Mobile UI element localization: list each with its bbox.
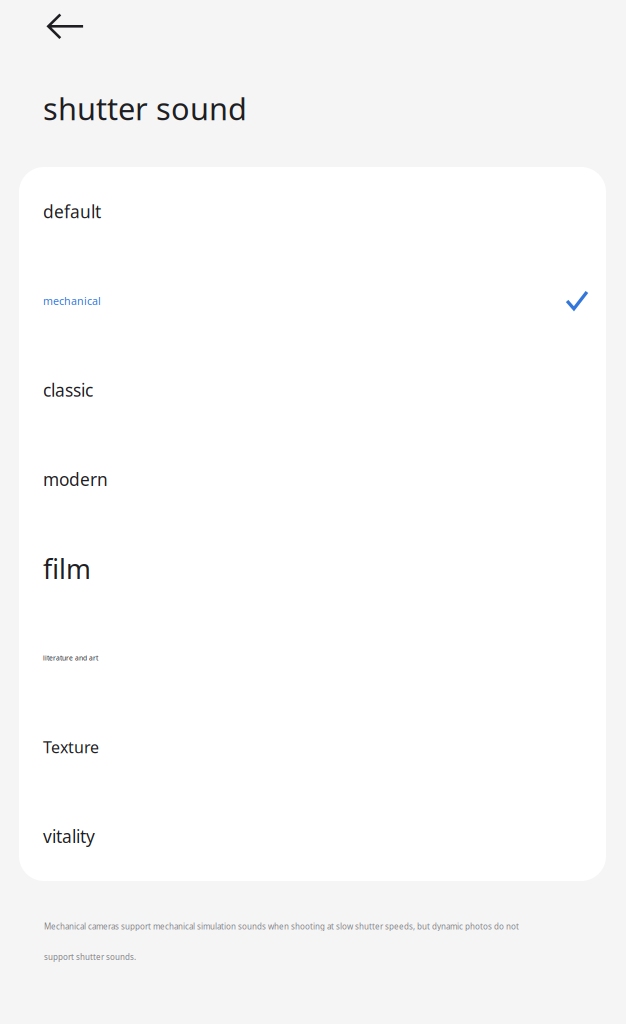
staticText: modern: [43, 468, 108, 491]
button[interactable]: mechanical: [19, 256, 606, 345]
staticText: Texture: [43, 736, 99, 758]
staticText: film: [43, 551, 91, 586]
staticText: shutter sound: [43, 88, 247, 129]
staticText: support shutter sounds.: [44, 952, 136, 962]
button[interactable]: vitality: [19, 792, 606, 881]
staticText: mechanical: [43, 294, 101, 308]
button[interactable]: Texture: [19, 702, 606, 792]
button[interactable]: modern: [19, 435, 606, 524]
button[interactable]: film: [19, 524, 606, 613]
staticText: classic: [43, 379, 93, 402]
staticText: Mechanical cameras support mechanical si…: [44, 921, 519, 932]
button[interactable]: default: [19, 167, 606, 256]
staticText: literature and art: [43, 653, 98, 662]
button[interactable]: literature and art: [19, 613, 606, 702]
staticText: vitality: [43, 825, 95, 848]
button[interactable]: classic: [19, 345, 606, 435]
staticText: default: [43, 200, 101, 223]
button[interactable]: Back: [0, 0, 102, 53]
